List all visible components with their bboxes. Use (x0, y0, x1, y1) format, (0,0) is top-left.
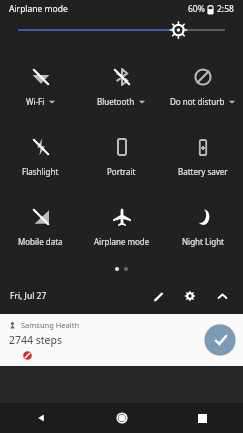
button[interactable]: Collapse (211, 285, 233, 307)
staticText: Night Light (182, 236, 224, 247)
button[interactable]: Samsung Health (0, 314, 243, 366)
button[interactable]: Wi-Fi (0, 65, 81, 109)
staticText: Portrait (107, 166, 136, 177)
button[interactable]: Portrait (81, 135, 162, 179)
staticText: Flashlight (22, 166, 59, 177)
staticText: Samsung Health (21, 320, 80, 330)
staticText: Bluetooth (97, 96, 135, 107)
button[interactable]: Edit (147, 285, 169, 307)
button[interactable]: Battery saver (162, 135, 243, 179)
staticText: 2744 steps (9, 333, 62, 347)
staticText: Mobile data (18, 236, 63, 247)
staticText: 2:58 (217, 3, 234, 15)
button[interactable]: Back (0, 403, 81, 433)
button[interactable]: Mobile data (0, 205, 81, 249)
staticText: Do not disturb (170, 96, 225, 107)
button[interactable]: Settings (179, 285, 201, 307)
staticText: Battery saver (178, 166, 228, 177)
staticText: Airplane mode (9, 3, 68, 15)
button[interactable]: Bluetooth (81, 65, 162, 109)
staticText: Fri, Jul 27 (10, 290, 47, 302)
button[interactable]: Airplane mode (81, 205, 162, 249)
button[interactable]: Recent apps (162, 403, 243, 433)
button[interactable]: Home (81, 403, 162, 433)
staticText: Airplane mode (94, 236, 150, 247)
button[interactable]: Night Light (162, 205, 243, 249)
staticText: Wi-Fi (26, 96, 45, 107)
button[interactable]: Brightness (0, 18, 243, 42)
button[interactable]: Do not disturb (162, 65, 243, 109)
button[interactable]: Flashlight (0, 135, 81, 179)
staticText: 60% (188, 3, 205, 15)
